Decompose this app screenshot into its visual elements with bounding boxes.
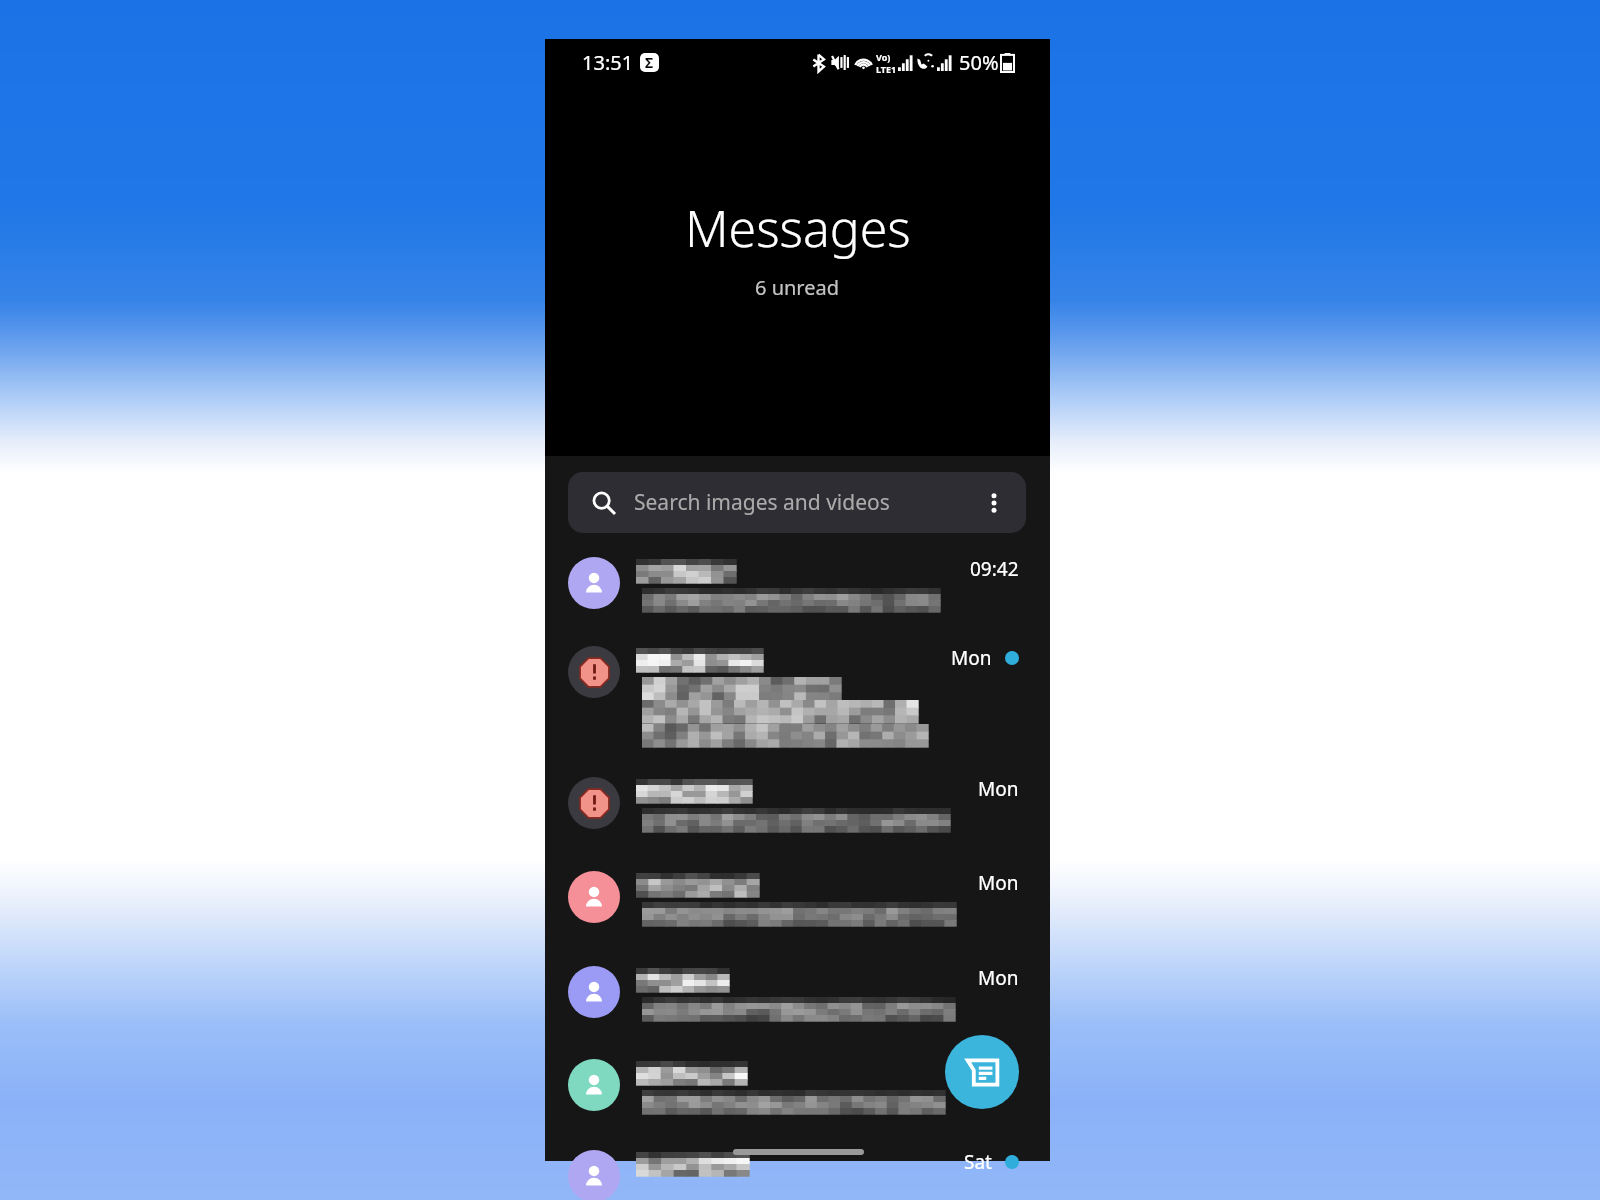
button[interactable]: Search images and videos xyxy=(568,472,1026,533)
staticText: Σ xyxy=(645,53,654,72)
staticText: Messages xyxy=(685,194,911,262)
button[interactable] xyxy=(545,952,1050,1031)
staticText: Vo) xyxy=(876,51,891,63)
button[interactable] xyxy=(545,1136,1050,1191)
staticText: Mon xyxy=(978,870,1019,896)
staticText: LTE1 xyxy=(876,63,897,75)
button[interactable] xyxy=(545,763,1050,842)
staticText: Mon xyxy=(951,645,992,671)
staticText: Sat xyxy=(964,1149,992,1175)
button[interactable]: More options xyxy=(980,489,1008,517)
staticText: 50% xyxy=(959,49,999,76)
button[interactable] xyxy=(545,1045,1050,1124)
staticText: Search images and videos xyxy=(634,488,890,517)
button[interactable] xyxy=(545,857,1050,936)
staticText: Mon xyxy=(978,965,1019,991)
button[interactable] xyxy=(545,543,1050,622)
staticText: 09:42 xyxy=(970,556,1019,582)
staticText: 6 unread xyxy=(755,274,840,301)
staticText: Mon xyxy=(978,776,1019,802)
button[interactable] xyxy=(545,632,1050,757)
staticText: 13:51 xyxy=(582,49,634,76)
button[interactable]: Start new conversation xyxy=(945,1035,1019,1109)
